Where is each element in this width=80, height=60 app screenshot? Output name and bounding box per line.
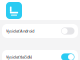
staticText: Vysielať tlačidlá xyxy=(6,54,32,60)
button[interactable]: Vysielať tlačidlá xyxy=(2,50,78,60)
button[interactable]: Vysielať Android xyxy=(2,24,78,38)
staticText: Vysielať Android xyxy=(6,28,34,34)
